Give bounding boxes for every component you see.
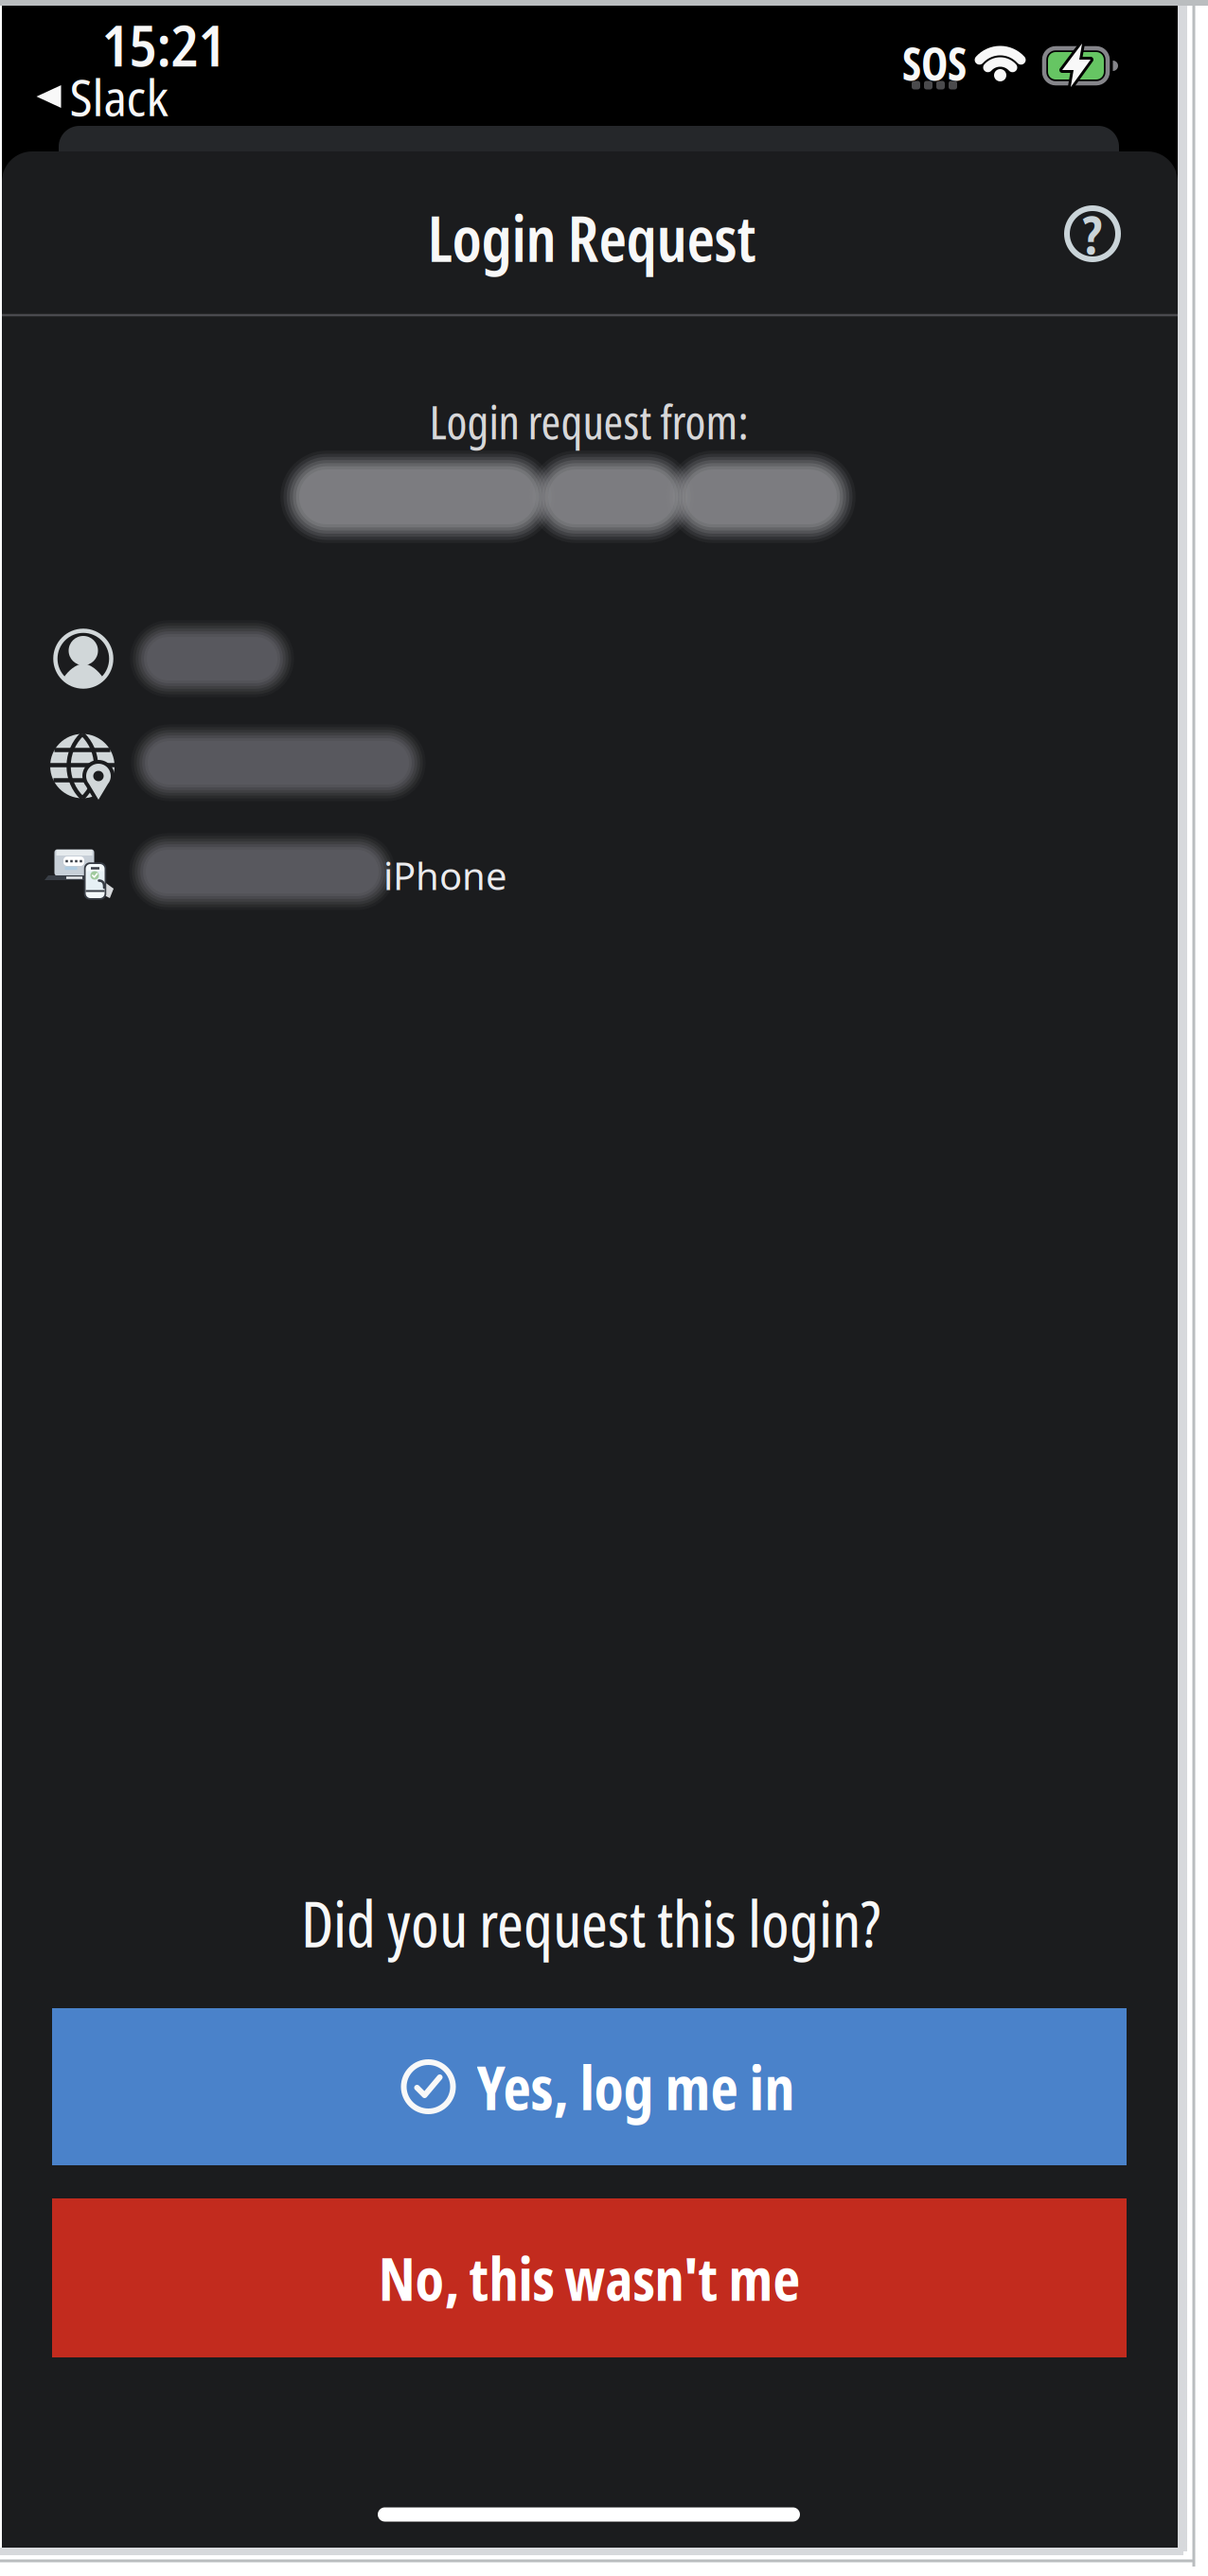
staticText: SOS bbox=[902, 32, 967, 94]
staticText: Slack bbox=[70, 62, 168, 131]
button[interactable]: No, this wasn't me bbox=[52, 2198, 1127, 2357]
staticText: Login request from: bbox=[429, 389, 748, 453]
staticText: Yes, log me in bbox=[477, 2045, 795, 2128]
staticText: Did you request this login? bbox=[301, 1880, 880, 1966]
staticText: 15:21 bbox=[102, 6, 226, 83]
staticText: ? bbox=[1083, 198, 1102, 270]
button[interactable]: Yes, log me in bbox=[52, 2008, 1127, 2165]
button[interactable]: Slack bbox=[36, 62, 168, 131]
staticText: No, this wasn't me bbox=[378, 2237, 800, 2318]
staticText: iPhone bbox=[383, 850, 507, 900]
button[interactable]: Help bbox=[1063, 204, 1122, 263]
staticText: Login Request bbox=[427, 195, 756, 281]
